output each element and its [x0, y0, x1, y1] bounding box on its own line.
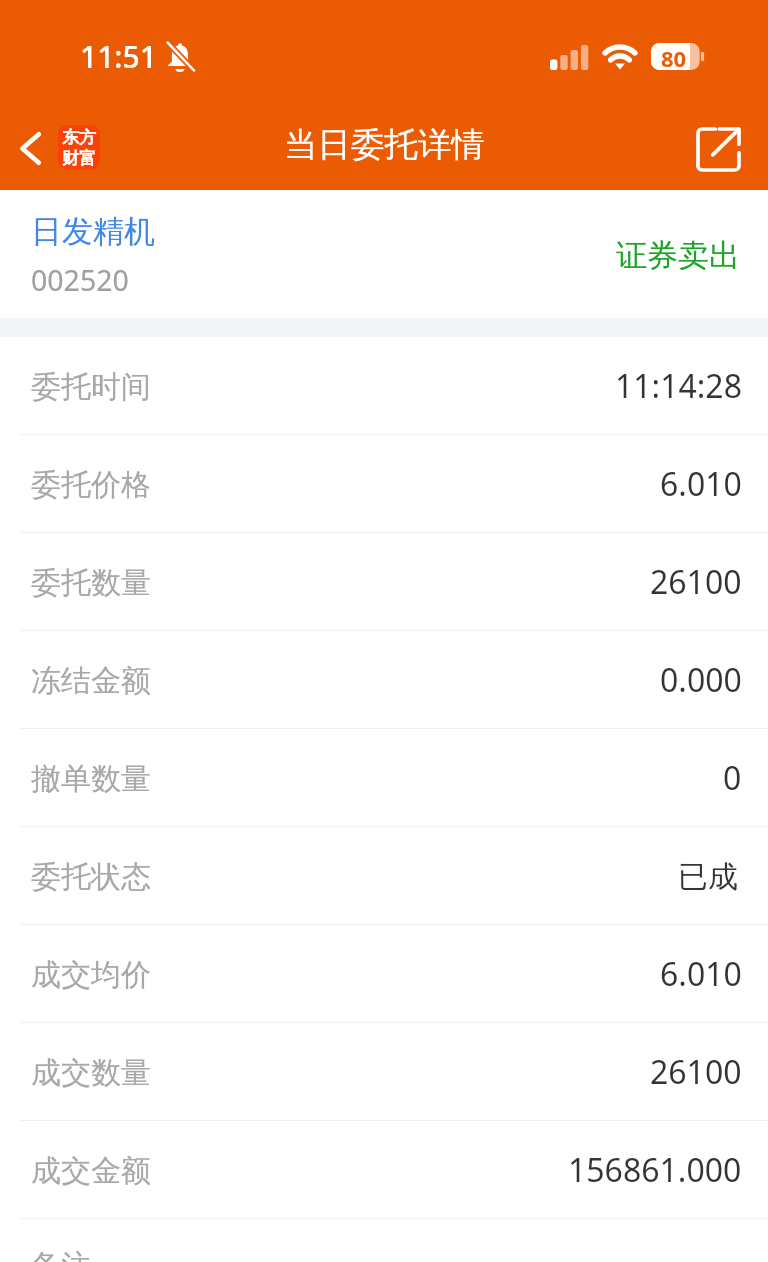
- staticText: 6.010: [660, 952, 742, 996]
- button[interactable]: 成交金额: [0, 1121, 768, 1218]
- staticText: 已成: [678, 858, 738, 896]
- button[interactable]: 成交数量: [0, 1023, 768, 1120]
- staticText: 证券卖出: [616, 236, 740, 275]
- staticText: 26100: [650, 1050, 742, 1094]
- button[interactable]: 成交均价: [0, 925, 768, 1022]
- button[interactable]: 委托状态: [0, 827, 768, 924]
- staticText: 委托时间: [31, 368, 151, 406]
- staticText: 冻结金额: [31, 662, 151, 700]
- button[interactable]: 委托价格: [0, 435, 768, 532]
- staticText: 0.000: [660, 658, 742, 702]
- staticText: 当日委托详情: [284, 124, 485, 166]
- button[interactable]: 日发精机: [0, 190, 768, 318]
- staticText: 东方: [62, 127, 96, 148]
- staticText: 80: [661, 43, 687, 70]
- button[interactable]: 备注: [0, 1219, 768, 1262]
- button[interactable]: 委托时间: [0, 337, 768, 434]
- staticText: 0: [723, 756, 742, 800]
- staticText: 6.010: [660, 462, 742, 506]
- staticText: 撤单数量: [31, 760, 151, 798]
- button[interactable]: 撤单数量: [0, 729, 768, 826]
- staticText: 成交金额: [31, 1152, 151, 1190]
- staticText: 002520: [31, 261, 129, 300]
- button[interactable]: 冻结金额: [0, 631, 768, 728]
- staticText: 11:14:28: [615, 364, 742, 408]
- button[interactable]: Back: [0, 112, 108, 173]
- staticText: 156861.000: [568, 1148, 742, 1192]
- staticText: 备注: [31, 1247, 91, 1262]
- staticText: 委托状态: [31, 858, 151, 896]
- staticText: 委托数量: [31, 564, 151, 602]
- staticText: 成交数量: [31, 1054, 151, 1092]
- staticText: 日发精机: [31, 212, 155, 251]
- staticText: 26100: [650, 560, 742, 604]
- staticText: 11:51: [80, 36, 157, 77]
- button[interactable]: 委托数量: [0, 533, 768, 630]
- staticText: 财富: [62, 148, 96, 169]
- staticText: 成交均价: [31, 956, 151, 994]
- button[interactable]: Share: [676, 104, 768, 181]
- staticText: 委托价格: [31, 466, 151, 504]
